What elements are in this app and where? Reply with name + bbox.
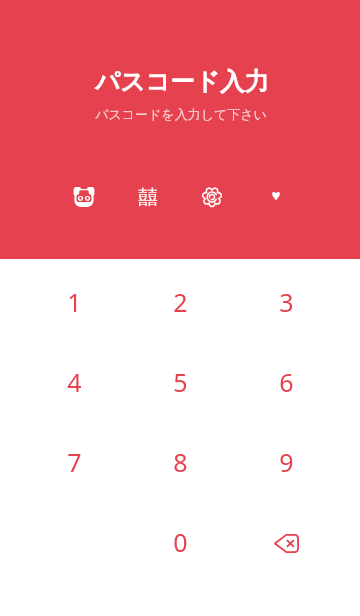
staticText: 8 xyxy=(173,445,188,479)
button[interactable]: 9 xyxy=(233,422,339,502)
staticText: 4 xyxy=(67,365,82,399)
staticText: 6 xyxy=(279,365,294,399)
staticText: 9 xyxy=(279,445,294,479)
staticText: 1 xyxy=(67,285,82,319)
button[interactable]: 4 xyxy=(21,342,127,422)
button[interactable]: 7 xyxy=(21,422,127,502)
staticText: パスコードを入力して下さい xyxy=(95,106,267,122)
button[interactable]: 6 xyxy=(233,342,339,422)
button[interactable]: 5 xyxy=(127,342,233,422)
staticText: 0 xyxy=(173,525,188,559)
button[interactable]: Backspace xyxy=(233,502,339,582)
button[interactable]: 3 xyxy=(233,262,339,342)
button[interactable]: 2 xyxy=(127,262,233,342)
staticText: パスコード入力 xyxy=(95,66,269,97)
button[interactable]: 0 xyxy=(127,502,233,582)
staticText: 2 xyxy=(173,285,188,319)
staticText: 7 xyxy=(67,445,82,479)
staticText: 3 xyxy=(279,285,294,319)
staticText: 囍 xyxy=(138,185,158,210)
button[interactable]: 1 xyxy=(21,262,127,342)
button[interactable]: 8 xyxy=(127,422,233,502)
staticText: 5 xyxy=(173,365,188,399)
